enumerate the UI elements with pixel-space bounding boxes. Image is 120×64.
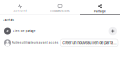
button[interactable]: Lien de partage	[0, 25, 120, 37]
button[interactable]: COMMENTAIRES	[40, 0, 80, 15]
staticText: Lauréats	[3, 18, 14, 22]
staticText: Lien de partage	[13, 29, 36, 33]
button[interactable]: Créer un nouveau lien de partage	[60, 39, 118, 47]
staticText: Partage	[94, 10, 106, 13]
staticText: Créer un nouveau lien de partage	[62, 40, 116, 45]
button[interactable]: ACTIVITÉ	[0, 0, 40, 15]
staticText: ACTIVITÉ	[13, 10, 26, 13]
staticText: COMMENTAIRES	[50, 10, 70, 13]
staticText: Autres utilisateurs ayant accès	[12, 41, 58, 44]
button[interactable]: Partage	[80, 0, 120, 15]
